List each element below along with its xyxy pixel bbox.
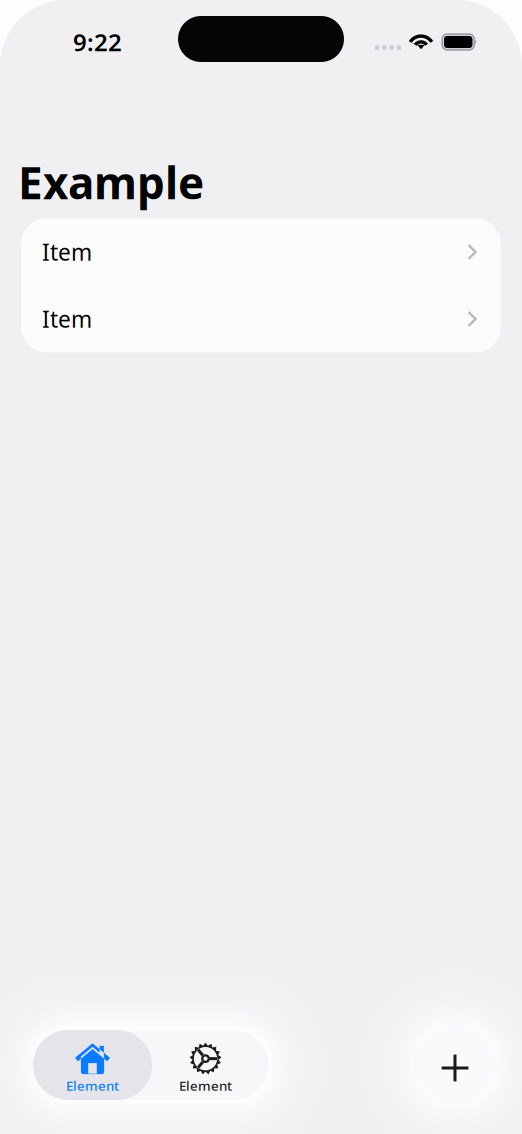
staticText: Example [18, 153, 204, 211]
button[interactable]: Element [33, 1030, 152, 1100]
staticText: Element [66, 1077, 119, 1094]
button[interactable]: Item [21, 285, 501, 352]
staticText: Item [42, 237, 92, 267]
staticText: Element [179, 1077, 232, 1094]
staticText: Item [42, 304, 92, 334]
button[interactable]: Add [415, 1025, 495, 1105]
button[interactable]: Item [21, 218, 501, 285]
staticText: 9:22 [73, 26, 122, 58]
button[interactable]: Element [152, 1030, 259, 1100]
